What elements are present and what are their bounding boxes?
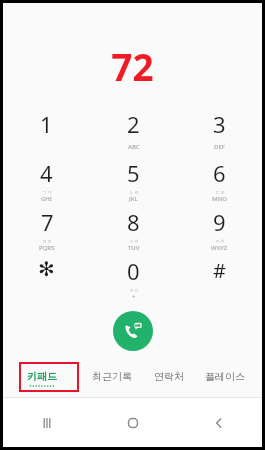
staticText: 72 xyxy=(111,41,154,91)
staticText: 8 xyxy=(127,207,140,237)
staticText: TUV xyxy=(128,244,140,252)
staticText: WXYZ xyxy=(211,244,228,252)
button[interactable]: ✻ xyxy=(3,253,90,302)
staticText: 1 xyxy=(40,109,53,139)
button[interactable]: 9 xyxy=(176,204,262,253)
staticText: PQRS xyxy=(39,244,55,252)
button[interactable]: Back xyxy=(176,398,262,447)
button[interactable]: 2 xyxy=(90,106,176,155)
staticText: ㄴㄹ xyxy=(129,189,139,195)
button[interactable]: 7 xyxy=(3,204,90,253)
staticText: 키패드 xyxy=(27,370,57,383)
button[interactable]: 연락처 xyxy=(143,360,195,396)
staticText: JKL xyxy=(129,195,138,203)
staticText: ㅇㅇ xyxy=(129,287,139,293)
staticText: GHI xyxy=(41,195,52,203)
button[interactable]: 6 xyxy=(176,155,262,204)
button[interactable]: 플레이스 xyxy=(195,360,255,396)
button[interactable]: 8 xyxy=(90,204,176,253)
staticText: 5 xyxy=(127,158,140,188)
staticText: 6 xyxy=(213,158,226,188)
button[interactable]: Recents xyxy=(3,398,90,447)
staticText: ㄱㅋ xyxy=(42,189,52,195)
staticText: 4 xyxy=(40,158,53,188)
button[interactable]: Call xyxy=(113,311,153,351)
staticText: DEF xyxy=(214,143,225,151)
staticText: 플레이스 xyxy=(205,370,245,383)
staticText: ㅈㅊ xyxy=(215,238,225,244)
staticText: 0 xyxy=(127,256,140,286)
button[interactable]: 최근기록 xyxy=(80,360,143,396)
button[interactable]: 키패드 xyxy=(3,360,80,396)
staticText: # xyxy=(213,257,226,284)
staticText: 2 xyxy=(127,109,140,139)
staticText: ㄷㅌ xyxy=(215,189,225,195)
button[interactable]: 1 xyxy=(3,106,90,155)
staticText: ✻ xyxy=(38,257,55,280)
staticText: + xyxy=(132,293,136,301)
staticText: 9 xyxy=(213,207,226,237)
button[interactable]: 0 xyxy=(90,253,176,302)
button[interactable]: Home xyxy=(90,398,176,447)
staticText: MNO xyxy=(212,195,227,203)
button[interactable]: 4 xyxy=(3,155,90,204)
staticText: ABC xyxy=(128,143,140,151)
staticText: ㅂㅍ xyxy=(42,238,52,244)
staticText: 연락처 xyxy=(154,370,184,383)
staticText: 3 xyxy=(213,109,226,139)
staticText: ㅅㅎ xyxy=(129,238,139,244)
button[interactable]: 5 xyxy=(90,155,176,204)
staticText: 7 xyxy=(41,207,54,237)
button[interactable]: 3 xyxy=(176,106,262,155)
staticText: 최근기록 xyxy=(92,370,132,383)
button[interactable]: # xyxy=(176,253,262,302)
